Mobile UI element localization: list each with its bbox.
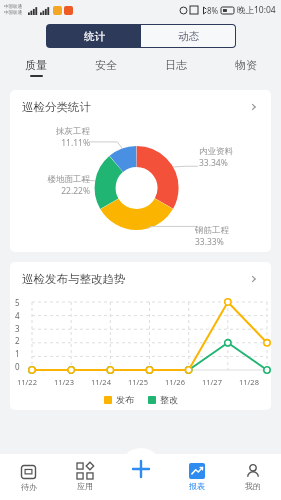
staticText: 11/27 [202,377,222,387]
staticText: 8% [207,5,219,16]
staticText: 巡检发布与整改趋势 [22,272,126,286]
staticText: 0 [15,361,20,372]
staticText: 11/24 [91,377,111,387]
staticText: 晚上10:04 [237,4,276,16]
staticText: 2 [15,335,20,346]
staticText: 物资 [235,58,257,72]
button[interactable]: 日志 [141,52,211,82]
staticText: 我的 [245,481,261,491]
staticText: 5 [15,297,20,308]
button[interactable]: 巡检分类统计 [10,90,271,124]
button[interactable]: 统计 [47,25,141,47]
staticText: 质量 [25,58,47,72]
staticText: 4 [15,310,20,321]
button[interactable]: 安全 [71,52,141,82]
staticText: 应用 [77,481,93,491]
staticText: 中国联通 [4,4,22,10]
button[interactable]: 新建 [120,448,162,490]
staticText: 钢筋工程 [195,225,257,236]
staticText: 发布 [116,394,134,405]
button[interactable]: 动态 [141,25,235,47]
staticText: 待办 [21,482,37,492]
staticText: 动态 [178,30,199,43]
staticText: 22.22% [16,185,90,197]
button[interactable]: 质量 [0,52,71,82]
button[interactable]: 物资 [211,52,281,82]
staticText: 11.11% [28,137,90,149]
staticText: 11/25 [128,377,148,387]
staticText: 3 [15,323,20,334]
staticText: 11/23 [54,377,74,387]
staticText: 抹灰工程 [28,126,90,137]
button[interactable]: 应用 [57,454,113,500]
staticText: 33.33% [195,236,257,248]
staticText: 11/26 [165,377,185,387]
staticText: 统计 [84,30,105,43]
staticText: 楼地面工程 [16,174,90,185]
staticText: 日志 [165,58,187,72]
staticText: 报表 [189,481,205,491]
staticText: 整改 [160,394,178,405]
staticText: 安全 [95,58,117,72]
staticText: 1 [15,348,20,359]
staticText: 巡检分类统计 [22,100,91,114]
button[interactable]: 巡检发布与整改趋势 [10,262,271,296]
button[interactable]: 报表 [169,454,225,500]
button[interactable]: 我的 [225,454,281,500]
staticText: 33.34% [199,157,261,169]
button[interactable]: 待办 [0,454,57,500]
staticText: 11/22 [17,377,37,387]
staticText: 内业资料 [199,146,261,157]
staticText: 11/28 [239,377,259,387]
staticText: 中国联通 [4,10,22,16]
